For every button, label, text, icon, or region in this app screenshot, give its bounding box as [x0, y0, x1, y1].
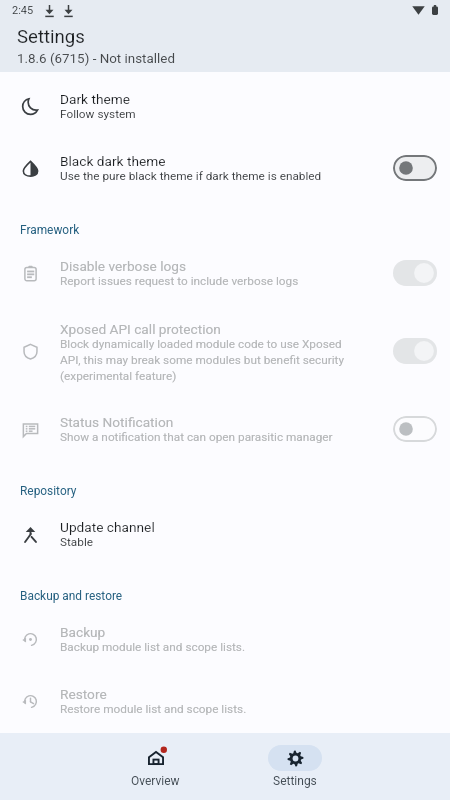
staticText: 1.8.6 (6715) - Not installed: [17, 51, 175, 67]
staticText: Show a notification that can open parasi…: [60, 430, 333, 444]
staticText: Update channel: [60, 519, 155, 535]
staticText: Backup and restore: [20, 589, 123, 603]
staticText: Stable: [60, 535, 94, 549]
staticText: Follow system: [60, 107, 136, 121]
button[interactable]: Backup: [0, 608, 450, 670]
button[interactable]: Toggle: [393, 155, 437, 181]
staticText: Status Notification: [60, 414, 174, 430]
other: Settings: [287, 750, 304, 767]
staticText: Disable verbose logs: [60, 258, 187, 274]
button[interactable]: Toggle: [393, 260, 437, 286]
button[interactable]: Update channel: [0, 503, 450, 565]
button[interactable]: Dark theme: [0, 75, 450, 137]
button[interactable]: Restore: [0, 670, 450, 732]
staticText: 2:45: [12, 4, 34, 17]
staticText: Settings: [17, 26, 85, 48]
staticText: Dark theme: [60, 91, 130, 107]
staticText: Repository: [20, 484, 77, 498]
staticText: Settings: [273, 774, 317, 788]
button[interactable]: Toggle: [393, 338, 437, 364]
staticText: Overview: [131, 774, 180, 788]
staticText: Framework: [20, 223, 80, 237]
button[interactable]: Settings: [225, 733, 364, 800]
staticText: Restore: [60, 686, 107, 702]
button[interactable]: Xposed API call protection: [0, 304, 450, 398]
staticText: Black dark theme: [60, 153, 166, 169]
staticText: Report issues request to include verbose…: [60, 274, 299, 288]
other: Overview: [148, 750, 164, 766]
button[interactable]: Disable verbose logs: [0, 242, 450, 304]
staticText: Restore module list and scope lists.: [60, 702, 247, 716]
staticText: Use the pure black theme if dark theme i…: [60, 169, 322, 183]
button[interactable]: Toggle: [393, 416, 437, 442]
button[interactable]: Overview: [86, 733, 225, 800]
button[interactable]: Black dark theme: [0, 137, 450, 199]
staticText: Block dynamically loaded module code to …: [60, 337, 350, 382]
staticText: Backup module list and scope lists.: [60, 640, 246, 654]
button[interactable]: Status Notification: [0, 398, 450, 460]
staticText: Backup: [60, 624, 106, 640]
staticText: Xposed API call protection: [60, 321, 221, 337]
